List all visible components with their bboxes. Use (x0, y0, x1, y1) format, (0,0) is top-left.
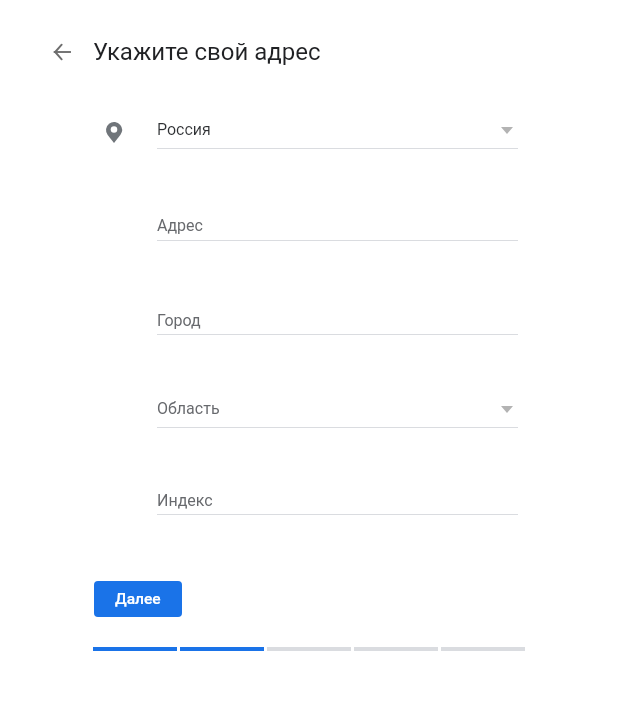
staticText: Далее (115, 590, 161, 608)
button[interactable]: Адрес (157, 196, 518, 241)
button[interactable]: Индекс (157, 470, 518, 515)
staticText: Россия (157, 120, 211, 139)
staticText: Индекс (157, 491, 213, 510)
staticText: Город (157, 311, 201, 330)
button[interactable]: Далее (94, 581, 182, 617)
staticText: Укажите свой адрес (93, 38, 321, 66)
other: Location (106, 122, 122, 143)
button[interactable]: Город (157, 290, 518, 335)
staticText: Область (157, 399, 220, 418)
button[interactable]: Россия (157, 104, 518, 149)
button[interactable]: Back (50, 40, 74, 64)
button[interactable]: Область (157, 383, 518, 428)
staticText: Адрес (157, 216, 203, 235)
